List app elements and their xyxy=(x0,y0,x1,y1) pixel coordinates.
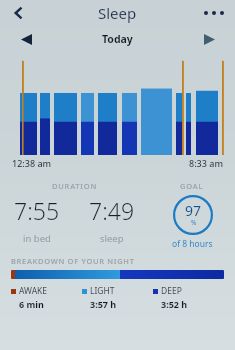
staticText: LIGHT xyxy=(90,285,115,297)
button[interactable]: Next day xyxy=(197,27,221,51)
button[interactable]: LIGHT xyxy=(82,285,153,310)
button[interactable]: More options xyxy=(199,1,229,25)
button[interactable]: Previous day xyxy=(14,27,38,51)
staticText: % xyxy=(191,218,197,227)
staticText: DURATION xyxy=(52,181,98,191)
staticText: BREAKDOWN OF YOUR NIGHT xyxy=(11,256,135,266)
staticText: 6 min xyxy=(19,298,44,310)
button[interactable]: 7:49 xyxy=(74,195,149,245)
staticText: of 8 hours xyxy=(172,238,213,250)
button[interactable]: 97 xyxy=(172,195,213,250)
staticText: 3:52 h xyxy=(161,298,188,310)
staticText: 7:55 xyxy=(14,195,60,226)
button[interactable]: AWAKE xyxy=(11,285,82,310)
staticText: Sleep xyxy=(98,3,137,23)
staticText: AWAKE xyxy=(19,285,48,297)
staticText: 8:33 am xyxy=(189,157,223,169)
staticText: 3:57 h xyxy=(90,298,117,310)
staticText: GOAL xyxy=(180,181,204,191)
staticText: 7:49 xyxy=(89,195,135,226)
staticText: Today xyxy=(102,32,133,46)
staticText: DEEP xyxy=(161,285,182,297)
button[interactable]: DEEP xyxy=(153,285,224,310)
staticText: 97 xyxy=(185,201,202,220)
staticText: 12:38 am xyxy=(12,157,52,169)
button[interactable] xyxy=(11,270,224,279)
button[interactable]: 7:55 xyxy=(0,195,74,245)
button[interactable]: Back xyxy=(6,0,32,26)
staticText: sleep xyxy=(100,232,124,245)
staticText: in bed xyxy=(23,232,51,245)
